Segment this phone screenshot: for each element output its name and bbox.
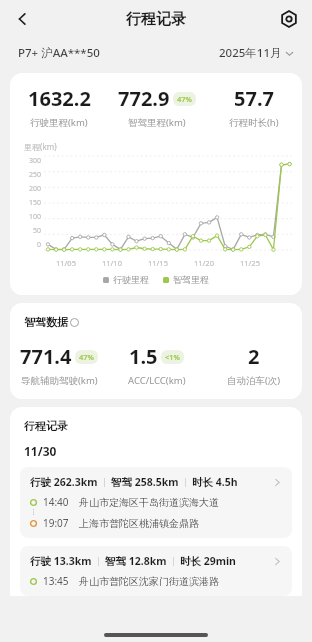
- staticText: 11/30: [24, 443, 57, 459]
- staticText: 11/05: [56, 258, 76, 268]
- staticText: 1.5: [129, 343, 158, 370]
- staticText: 行程时长(h): [229, 116, 279, 129]
- button[interactable]: 行驶 262.3km: [20, 467, 292, 538]
- staticText: 行驶里程(km): [30, 116, 88, 129]
- staticText: 自动泊车(次): [227, 374, 281, 387]
- staticText: 47%: [79, 352, 94, 362]
- staticText: 2: [248, 343, 260, 370]
- staticText: 智驾数据: [24, 315, 68, 329]
- staticText: 智驾里程: [173, 274, 209, 285]
- staticText: 导航辅助驾驶(km): [21, 374, 98, 387]
- staticText: ACC/LCC(km): [128, 374, 186, 387]
- staticText: 舟山市定海区干岛街道滨海大道: [79, 496, 219, 509]
- staticText: 19:07: [43, 516, 69, 530]
- staticText: 771.4: [20, 343, 72, 370]
- staticText: 47%: [177, 94, 192, 104]
- staticText: 14:40: [43, 495, 69, 509]
- button[interactable]: 2025年11月: [219, 45, 294, 61]
- button[interactable]: 行驶 13.3km: [20, 546, 292, 596]
- staticText: 50: [33, 226, 42, 236]
- staticText: 150: [29, 198, 42, 208]
- staticText: 2025年11月: [219, 45, 282, 61]
- staticText: 772.9: [118, 85, 170, 112]
- staticText: 行驶 262.3km: [30, 475, 98, 489]
- staticText: 智驾里程(km): [128, 116, 186, 129]
- staticText: 智驾 12.8km: [105, 554, 167, 568]
- staticText: 行驶 13.3km: [30, 554, 92, 568]
- staticText: 1632.2: [28, 85, 91, 112]
- staticText: 57.7: [234, 85, 274, 112]
- button[interactable]: Back: [6, 3, 38, 35]
- staticText: 11/20: [194, 258, 214, 268]
- staticText: 行驶里程: [113, 274, 149, 285]
- staticText: 11/15: [148, 258, 168, 268]
- staticText: 300: [29, 156, 42, 166]
- staticText: 250: [29, 170, 42, 180]
- staticText: 舟山市普陀区沈家门街道滨港路: [79, 575, 219, 588]
- button[interactable]: Settings: [274, 4, 304, 34]
- staticText: 行程记录: [126, 10, 186, 29]
- staticText: 0: [37, 240, 42, 250]
- staticText: 11/10: [102, 258, 122, 268]
- staticText: P7+ 沪AA***50: [18, 45, 100, 61]
- button[interactable]: Info: [70, 318, 79, 327]
- staticText: 100: [29, 212, 42, 222]
- staticText: 200: [29, 184, 42, 194]
- staticText: 行程记录: [24, 419, 68, 433]
- staticText: <1%: [165, 352, 180, 362]
- staticText: 时长 4.5h: [192, 475, 238, 489]
- staticText: 上海市普陀区桃浦镇金鼎路: [79, 517, 199, 530]
- staticText: 里程(km): [24, 141, 57, 152]
- staticText: 11/25: [240, 258, 260, 268]
- staticText: 13:45: [43, 574, 69, 588]
- staticText: 智驾 258.5km: [111, 475, 179, 489]
- staticText: 时长 29min: [180, 554, 236, 568]
